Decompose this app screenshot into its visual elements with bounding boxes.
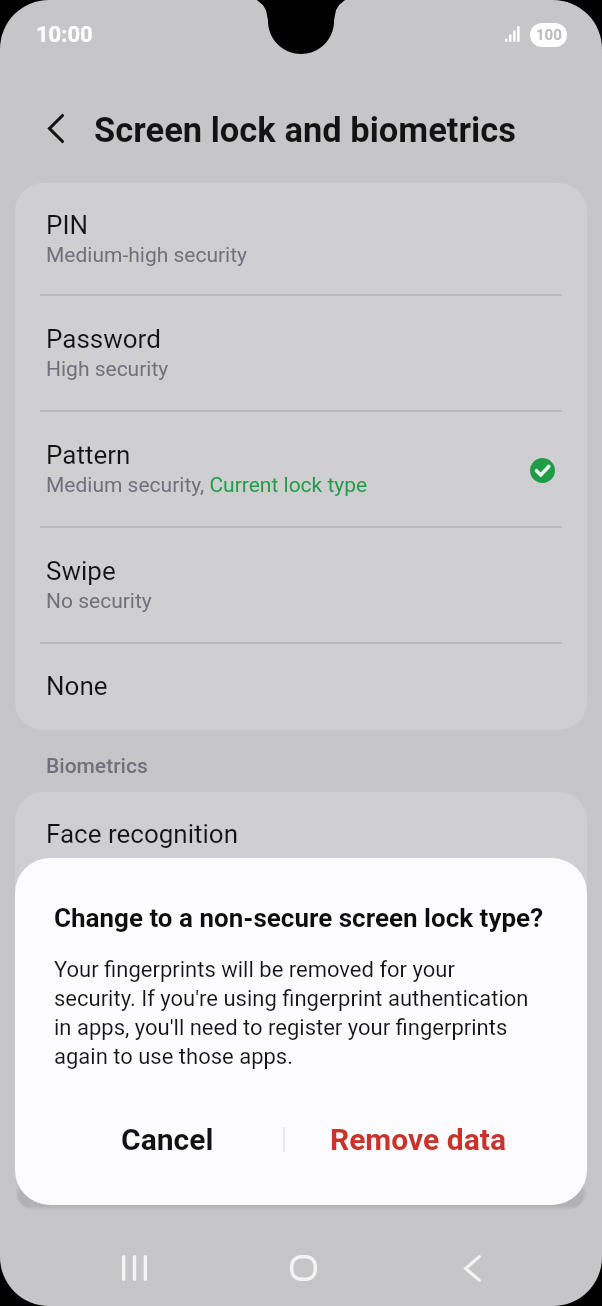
button[interactable]: Home: [219, 1234, 387, 1302]
staticText: Your fingerprints will be removed for yo…: [54, 957, 529, 1069]
staticText: No security: [46, 589, 152, 614]
button[interactable]: PIN: [15, 183, 587, 296]
button[interactable]: Password: [15, 296, 587, 412]
staticText: Fingerprints: [46, 905, 185, 935]
staticText: Face recognition: [46, 819, 239, 849]
button[interactable]: Face recognition: [15, 792, 587, 878]
button[interactable]: Fingerprints: [15, 878, 587, 964]
staticText: 10:00: [36, 22, 93, 48]
button[interactable]: None: [15, 644, 587, 730]
staticText: Password: [46, 324, 161, 354]
staticText: Medium security, Current lock type: [46, 473, 368, 498]
button[interactable]: Swipe: [15, 528, 587, 644]
staticText: 100: [536, 26, 562, 44]
button[interactable]: Remove data: [285, 1105, 587, 1173]
staticText: Change to a non-secure screen lock type?: [54, 903, 544, 933]
button[interactable]: Pattern: [15, 412, 587, 528]
staticText: Medium-high security: [46, 243, 248, 268]
button[interactable]: Recent apps: [50, 1234, 218, 1302]
button[interactable]: Back: [388, 1234, 556, 1302]
staticText: High security: [46, 357, 169, 382]
staticText: Cancel: [121, 1122, 214, 1157]
staticText: Swipe: [46, 556, 116, 586]
button[interactable]: Back: [35, 108, 76, 149]
staticText: Screen lock and biometrics: [94, 110, 517, 150]
staticText: PIN: [46, 210, 89, 240]
staticText: None: [46, 671, 108, 701]
staticText: Biometrics: [46, 754, 148, 779]
staticText: Pattern: [46, 440, 131, 470]
staticText: Remove data: [330, 1122, 506, 1157]
button[interactable]: Cancel: [15, 1105, 283, 1173]
